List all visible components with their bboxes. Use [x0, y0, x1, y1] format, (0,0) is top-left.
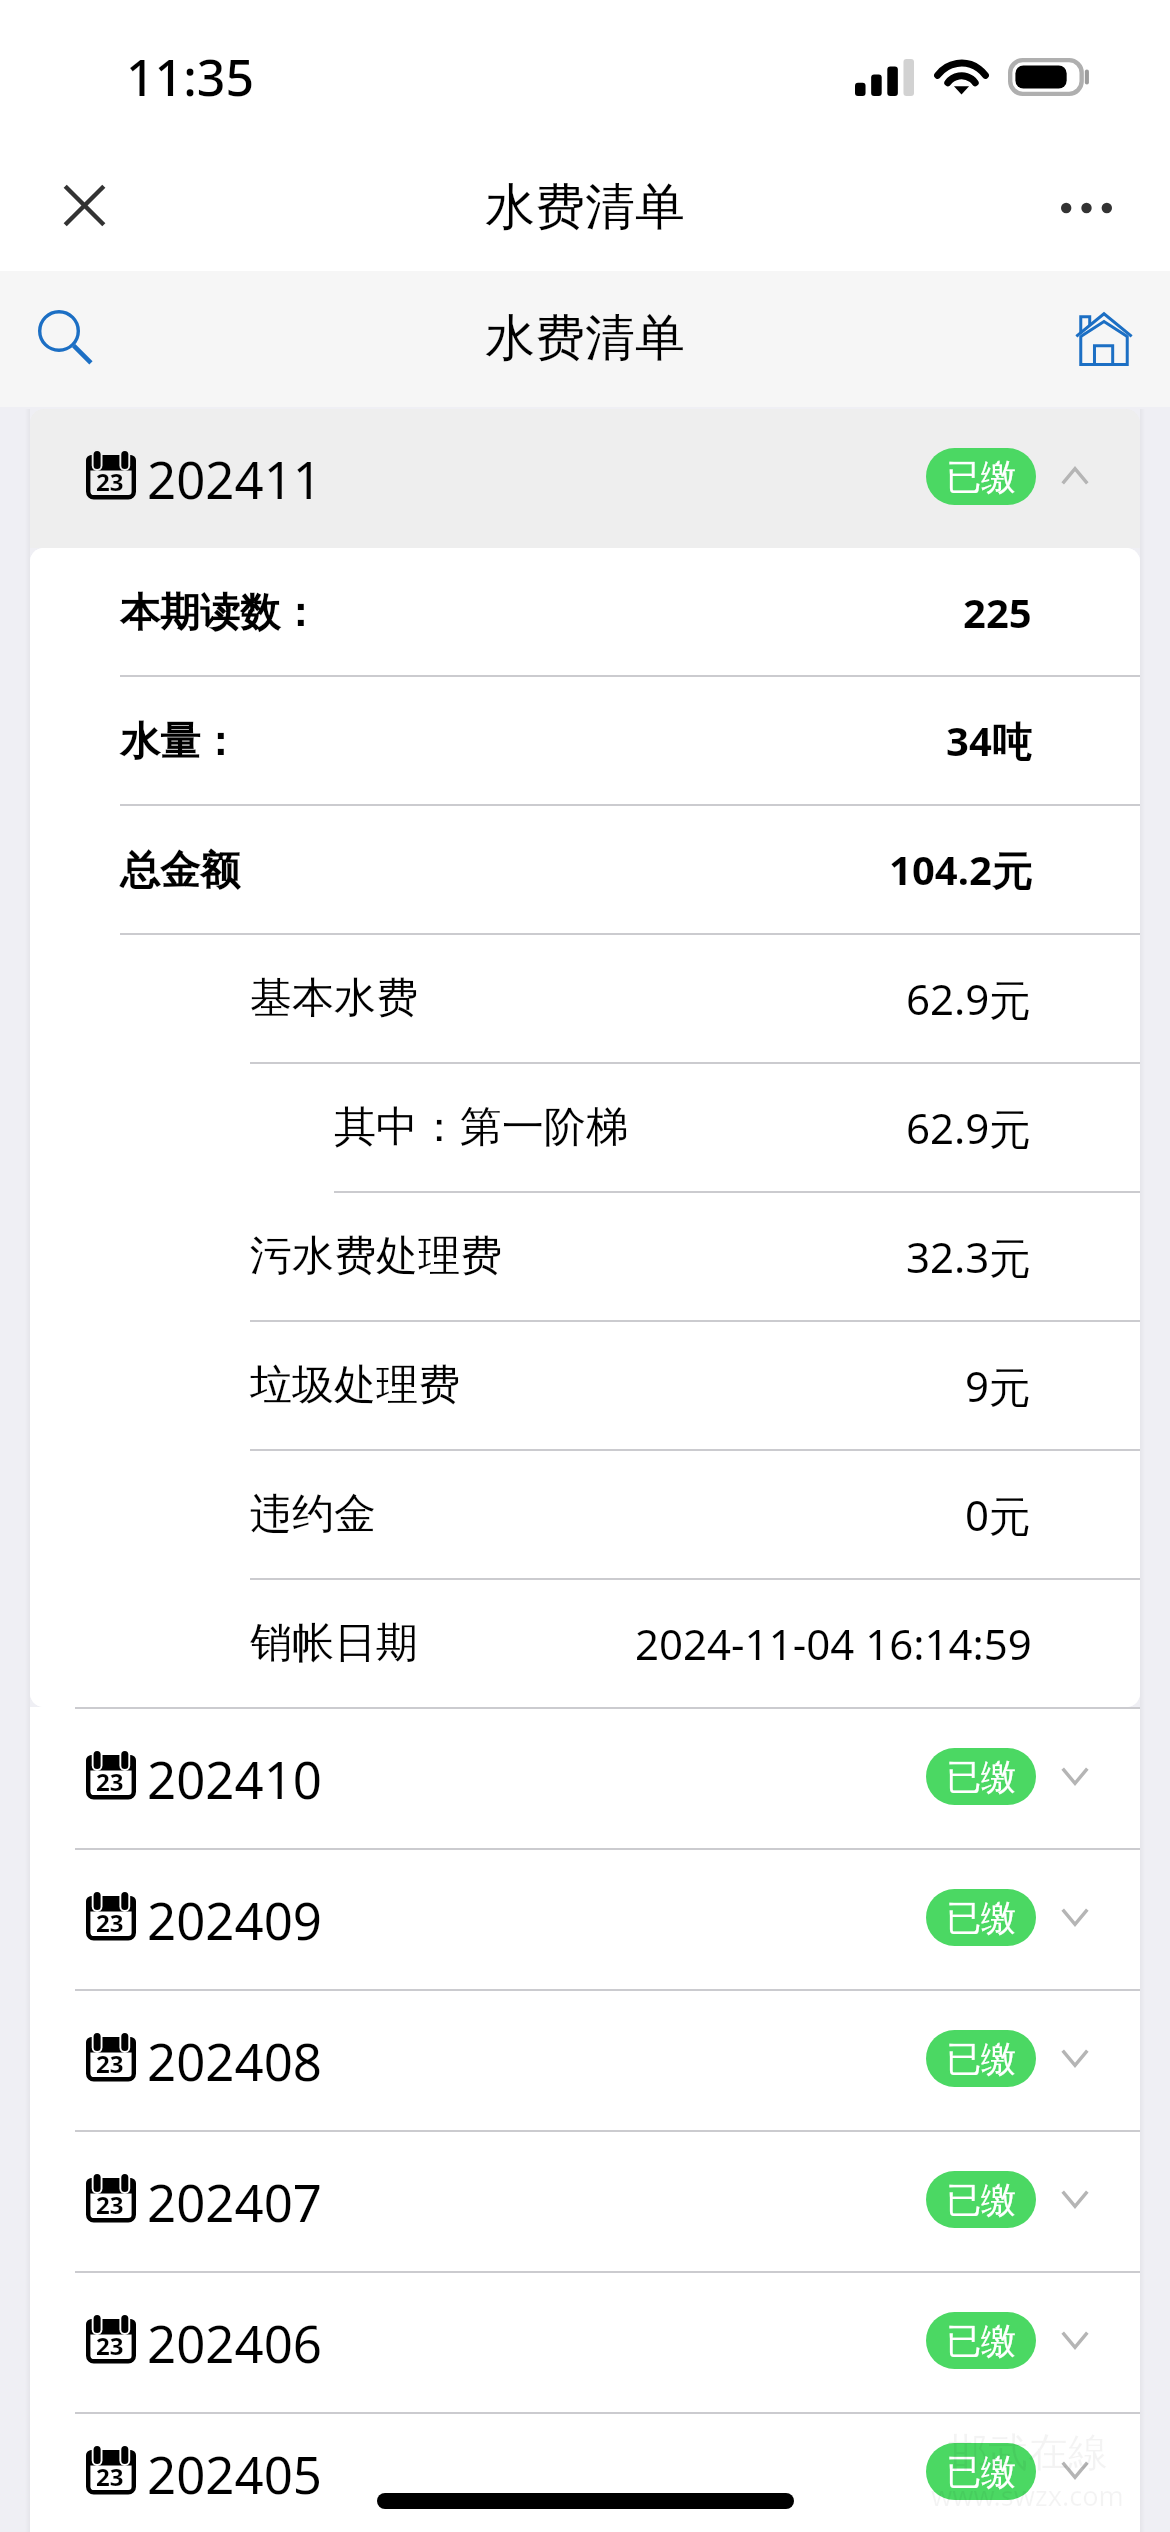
staticText: 违约金 [250, 1488, 376, 1541]
staticText: 污水费处理费 [250, 1230, 502, 1283]
button[interactable]: Search [6, 279, 126, 399]
staticText: 已缴 [946, 2319, 1016, 2363]
staticText: 23 [96, 2047, 124, 2080]
button[interactable]: 23 [30, 2414, 1140, 2532]
staticText: 23 [96, 2188, 124, 2221]
button[interactable]: More options [1026, 148, 1146, 268]
staticText: 202405 [147, 2439, 323, 2508]
staticText: 225 [963, 585, 1032, 639]
staticText: 23 [96, 1906, 124, 1939]
staticText: 34吨 [946, 713, 1032, 768]
button[interactable]: 其中：第一阶梯 [30, 1064, 1140, 1191]
staticText: 已缴 [946, 2037, 1016, 2081]
button[interactable]: 销帐日期 [30, 1580, 1140, 1707]
staticText: 62.9元 [906, 970, 1032, 1027]
staticText: 已缴 [946, 1755, 1016, 1799]
staticText: 23 [96, 1765, 124, 1798]
staticText: 32.3元 [906, 1228, 1032, 1285]
staticText: 销帐日期 [250, 1617, 418, 1670]
staticText: 其中：第一阶梯 [334, 1101, 628, 1154]
staticText: 水费清单 [485, 176, 685, 239]
staticText: 202411 [147, 444, 323, 513]
staticText: 202406 [147, 2308, 323, 2377]
staticText: www.swzx.com [931, 2477, 1124, 2514]
staticText: 23 [96, 465, 124, 498]
button[interactable]: 23 [30, 2132, 1140, 2271]
staticText: 62.9元 [906, 1099, 1032, 1156]
staticText: 基本水费 [250, 972, 418, 1025]
button[interactable]: 23 [30, 2273, 1140, 2412]
button[interactable]: 垃圾处理费 [30, 1322, 1140, 1449]
button[interactable]: 污水费处理费 [30, 1193, 1140, 1320]
staticText: 邯武在線 [948, 2427, 1108, 2477]
staticText: 0元 [965, 1486, 1032, 1543]
button[interactable]: 基本水费 [30, 935, 1140, 1062]
staticText: 23 [96, 2329, 124, 2362]
button[interactable]: 本期读数： [30, 548, 1140, 675]
button[interactable]: Home [1044, 279, 1164, 399]
staticText: 202407 [147, 2167, 323, 2236]
staticText: 2024-11-04 16:14:59 [635, 1615, 1032, 1672]
staticText: 11:35 [126, 43, 254, 111]
button[interactable]: 总金额 [30, 806, 1140, 933]
staticText: 水费清单 [485, 307, 685, 370]
button[interactable]: 23 [30, 1991, 1140, 2130]
staticText: 已缴 [946, 2178, 1016, 2222]
staticText: 已缴 [946, 455, 1016, 499]
staticText: 9元 [965, 1357, 1032, 1414]
staticText: 23 [96, 2460, 124, 2493]
button[interactable]: 违约金 [30, 1451, 1140, 1578]
staticText: 总金额 [120, 845, 240, 895]
staticText: 垃圾处理费 [250, 1359, 460, 1412]
staticText: 本期读数： [120, 587, 320, 637]
staticText: 104.2元 [889, 842, 1032, 897]
button[interactable]: Close [24, 148, 144, 268]
staticText: 水量： [120, 716, 240, 766]
staticText: 202409 [147, 1885, 323, 1954]
button[interactable]: 23 [30, 1850, 1140, 1989]
button[interactable]: 23 [30, 409, 1140, 548]
button[interactable]: 23 [30, 1709, 1140, 1848]
staticText: 202408 [147, 2026, 323, 2095]
staticText: 202410 [147, 1744, 323, 1813]
staticText: 已缴 [946, 2450, 1016, 2494]
staticText: 已缴 [946, 1896, 1016, 1940]
button[interactable]: 水量： [30, 677, 1140, 804]
